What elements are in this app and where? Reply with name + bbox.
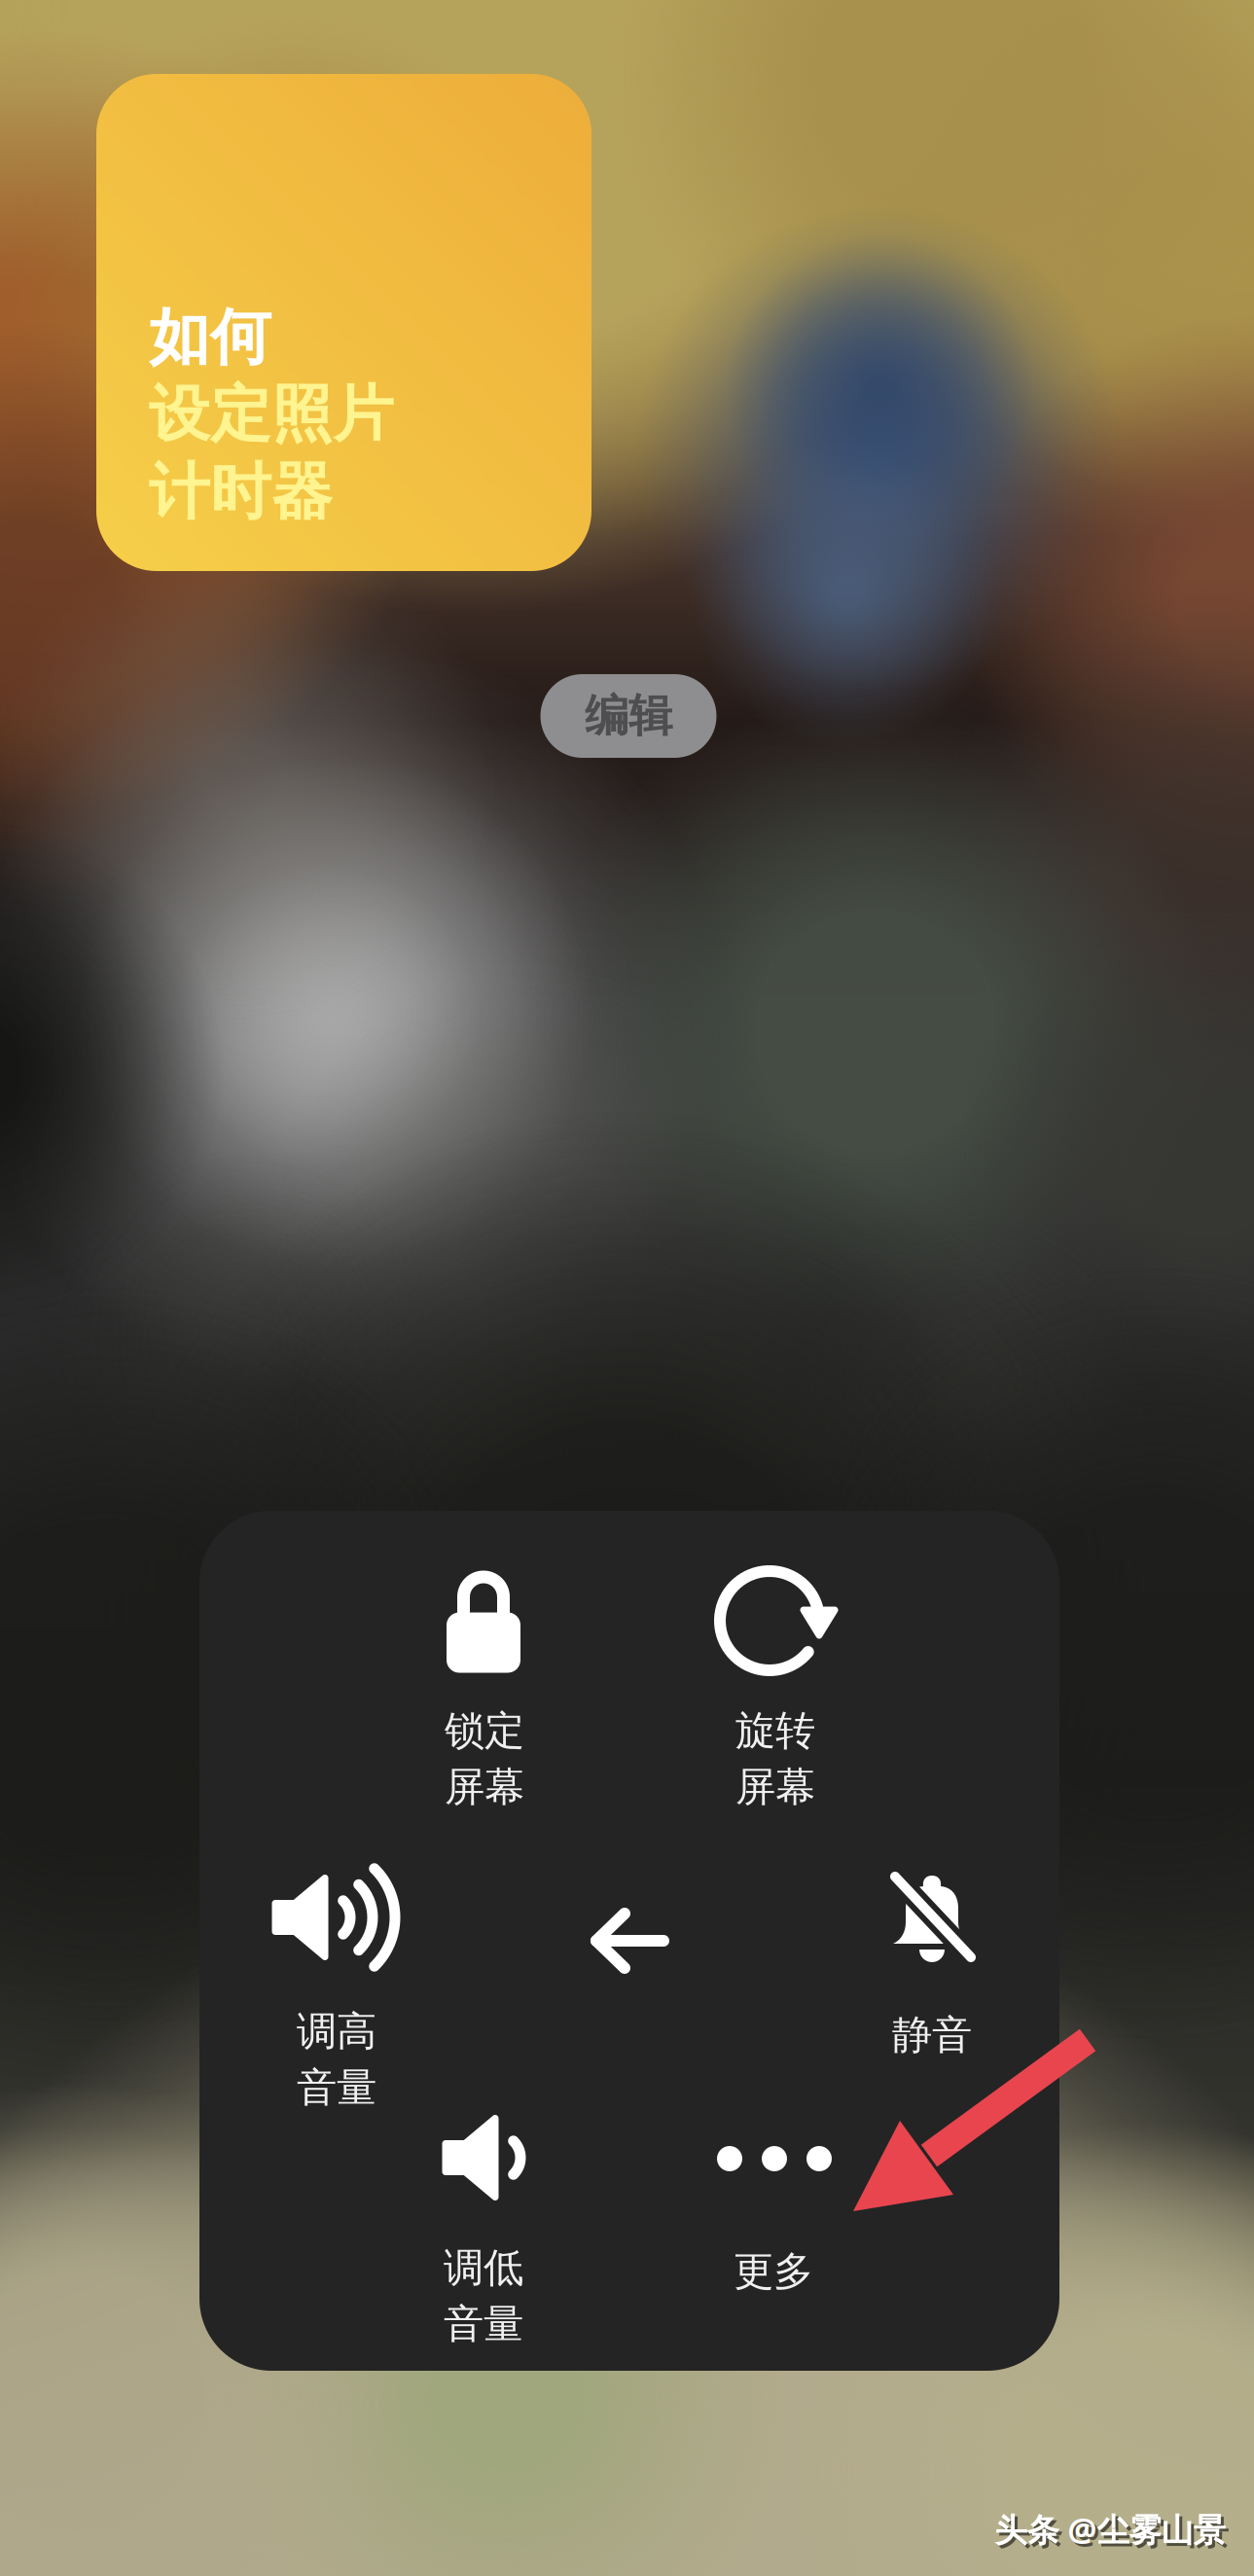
staticText: 编辑 [585,689,672,743]
button[interactable]: 调低 [355,2096,616,2357]
staticText: 音量 [297,2063,376,2112]
button[interactable]: 调高 [207,1858,468,2119]
staticText: 静音 [892,2010,972,2060]
staticText: 屏幕 [735,1762,815,1812]
button[interactable]: 更多 [644,2085,905,2345]
button[interactable]: 锁定 [353,1559,614,1820]
staticText: 调高 [297,2007,376,2056]
staticText: 更多 [734,2247,813,2296]
staticText: 头条 @尘雾山景 [998,2511,1228,2554]
staticText: 如何 [149,300,271,375]
staticText: 设定照片 [149,377,394,452]
staticText: 计时器 [149,455,333,530]
button[interactable]: 编辑 [540,674,717,758]
staticText: 音量 [444,2299,523,2349]
staticText: 屏幕 [445,1762,524,1812]
staticText: 调低 [444,2243,523,2292]
button[interactable]: 旋转 [644,1559,905,1820]
button[interactable]: 返回 [552,1863,707,2019]
staticText: 头条 @尘雾山景 [995,2508,1225,2551]
staticText: 旋转 [735,1706,815,1755]
button[interactable]: 静音 [803,1846,1063,2107]
staticText: 锁定 [445,1706,524,1755]
